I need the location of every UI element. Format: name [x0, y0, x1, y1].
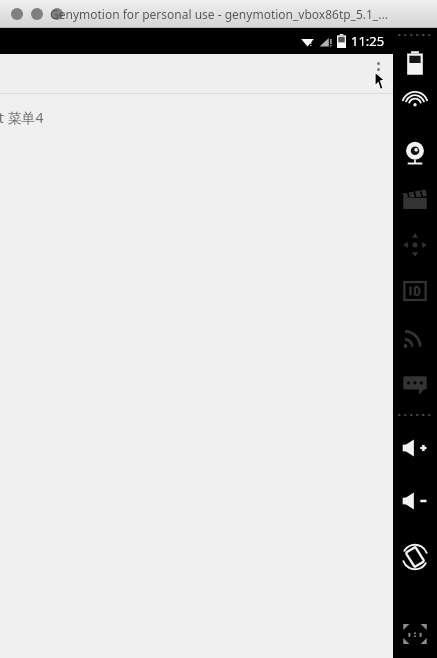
- button[interactable]: Network: [393, 314, 437, 360]
- button[interactable]: Video recording: [393, 176, 437, 222]
- staticText: Genymotion for personal use - genymotion…: [50, 6, 388, 22]
- button[interactable]: GPS: [393, 84, 437, 130]
- button[interactable]: Messages: [393, 360, 437, 408]
- button[interactable]: More options: [365, 56, 391, 82]
- button[interactable]: Rotate: [393, 528, 437, 586]
- button[interactable]: Accelerometer: [393, 222, 437, 268]
- button[interactable]: Identifiers: [393, 268, 437, 314]
- button[interactable]: Volume up: [393, 422, 437, 474]
- button[interactable]: Window control: [51, 8, 63, 20]
- staticText: select 菜单4: [0, 108, 44, 127]
- button[interactable]: Camera: [393, 130, 437, 176]
- button[interactable]: Actual size 1:1: [393, 610, 437, 658]
- button[interactable]: Volume down: [393, 474, 437, 528]
- button[interactable]: Window control: [11, 8, 23, 20]
- button[interactable]: Window control: [31, 8, 43, 20]
- staticText: 11:25: [351, 32, 385, 50]
- button[interactable]: Battery: [393, 42, 437, 84]
